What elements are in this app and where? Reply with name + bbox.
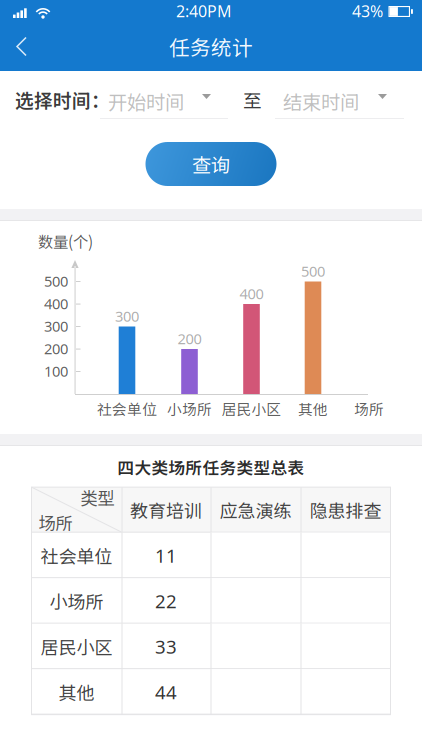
- button[interactable]: 开始时间: [100, 79, 228, 123]
- staticText: 开始时间: [108, 87, 184, 115]
- staticText: 200: [44, 339, 68, 358]
- staticText: 500: [44, 271, 68, 291]
- button[interactable]: Back: [0, 22, 44, 70]
- staticText: 44: [155, 679, 177, 704]
- staticText: 500: [301, 261, 325, 281]
- staticText: 300: [44, 316, 68, 336]
- staticText: 11: [155, 543, 177, 568]
- staticText: 社会单位: [97, 398, 157, 419]
- staticText: 33: [155, 634, 177, 659]
- staticText: 至: [243, 86, 262, 113]
- staticText: 300: [115, 306, 139, 326]
- staticText: 数量(个): [38, 230, 93, 252]
- staticText: 400: [239, 284, 263, 303]
- button[interactable]: 结束时间: [275, 79, 404, 123]
- staticText: 场所: [38, 510, 72, 535]
- staticText: 400: [44, 294, 68, 313]
- button[interactable]: 查询: [145, 142, 276, 186]
- staticText: 教育培训: [130, 497, 202, 523]
- staticText: 43%: [352, 0, 383, 22]
- staticText: 任务统计: [169, 31, 253, 61]
- staticText: 小场所: [49, 588, 103, 614]
- staticText: 隐患排查: [309, 497, 381, 523]
- staticText: 查询: [192, 150, 230, 178]
- staticText: 其他: [58, 679, 94, 705]
- staticText: 小场所: [167, 398, 212, 419]
- staticText: 类型: [80, 485, 114, 510]
- staticText: 社会单位: [40, 542, 112, 568]
- staticText: 200: [177, 329, 201, 348]
- staticText: 场所: [354, 398, 384, 419]
- staticText: 应急演练: [219, 497, 291, 523]
- staticText: 结束时间: [283, 87, 359, 115]
- staticText: 2:40PM: [176, 0, 232, 22]
- staticText: 100: [44, 361, 68, 381]
- staticText: 居民小区: [40, 633, 112, 659]
- staticText: 22: [155, 588, 177, 613]
- staticText: 四大类场所任务类型总表: [117, 455, 304, 479]
- staticText: 居民小区: [221, 398, 281, 419]
- staticText: 选择时间：: [15, 86, 110, 113]
- staticText: 其他: [298, 398, 328, 419]
